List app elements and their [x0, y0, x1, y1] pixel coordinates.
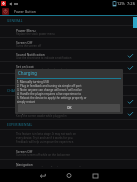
button[interactable]: This feature is in beta stage. It may no…	[0, 130, 137, 147]
button[interactable]: Recent apps	[82, 169, 108, 182]
staticText: This feature is in beta stage. It may no…	[16, 132, 77, 144]
staticText: Display a short message for every action	[16, 102, 68, 106]
staticText: Sound Notification	[16, 52, 45, 56]
button[interactable]: Power Menu	[0, 26, 137, 38]
staticText: Vibrate slightly when the action is perf…	[16, 80, 73, 84]
staticText: Screen Off	[16, 149, 33, 153]
staticText: Power Menu	[16, 28, 36, 32]
button[interactable]: Screen Off	[0, 38, 137, 50]
button[interactable]: Sound Notification	[0, 50, 137, 62]
button[interactable]: Haptic feedback	[0, 74, 137, 86]
staticText: Keep awake	[16, 110, 35, 114]
staticText: 1. Manually turning USB 2. Plug in feedb…	[17, 80, 87, 104]
staticText: OK	[67, 106, 72, 110]
button[interactable]: Show toast	[0, 96, 137, 108]
staticText: Power Button	[14, 9, 36, 14]
staticText: Turns the screen off	[16, 44, 42, 48]
staticText: Show toast	[16, 98, 34, 102]
staticText: GENERAL	[7, 19, 23, 23]
staticText: EXPERIMENTAL	[7, 123, 33, 127]
staticText: Tune the screen on the scrolling long pr…	[16, 166, 82, 167]
staticText: CHARGING	[7, 89, 26, 93]
button[interactable]: Back	[30, 169, 56, 182]
button[interactable]: Power Button	[0, 7, 137, 15]
staticText: Haptic feedback	[16, 76, 41, 80]
button[interactable]: Screen Off	[0, 147, 137, 160]
staticText: Replace the stock power menu	[16, 32, 55, 36]
staticText: Charging	[18, 70, 37, 76]
button[interactable]: Navigation	[0, 160, 137, 169]
staticText: Give the short tone to indicate a notifi…	[16, 56, 72, 60]
staticText: 7:26	[127, 1, 135, 6]
staticText: Screen Off	[16, 40, 33, 44]
button[interactable]: Keep awake	[0, 108, 137, 120]
staticText: Keep the screen awake while plugged in	[16, 114, 67, 118]
staticText: Navigation	[16, 162, 33, 166]
button[interactable]: Home	[56, 169, 82, 182]
staticText: Enable the service when the phone boots …	[16, 68, 73, 72]
staticText: Turn the screen off while on the lockscr…	[16, 153, 71, 157]
button[interactable]: Set on boot	[0, 62, 137, 74]
staticText: Set on boot	[16, 64, 34, 68]
button[interactable]: OK	[18, 104, 120, 112]
staticText: 12%	[117, 1, 125, 6]
